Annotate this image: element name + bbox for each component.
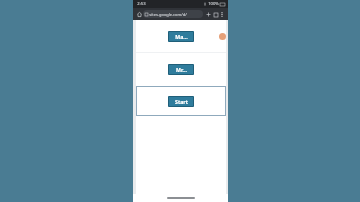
staticText: Start — [175, 98, 188, 105]
button[interactable]: sites.google.com/d/ — [143, 10, 203, 18]
button[interactable]: Ma... — [168, 31, 194, 42]
button[interactable]: Home — [136, 11, 143, 18]
staticText: 100% — [208, 1, 219, 7]
button[interactable]: More options — [219, 11, 225, 17]
button[interactable]: Tabs — [212, 11, 219, 18]
button[interactable]: Start — [168, 96, 194, 107]
staticText: Ma... — [175, 33, 188, 40]
staticText: sites.google.com/d/ — [149, 12, 187, 17]
button[interactable]: New tab — [205, 11, 212, 18]
button[interactable]: Mr... — [168, 64, 194, 75]
staticText: 2:53 — [137, 1, 146, 7]
staticText: Mr... — [176, 66, 187, 73]
